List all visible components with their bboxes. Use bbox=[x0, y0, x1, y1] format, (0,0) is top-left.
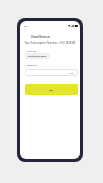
button[interactable]: USD bbox=[25, 69, 78, 76]
button[interactable]: Deactivate/Prepaid bbox=[25, 53, 50, 59]
staticText: Your Subscription Number: +912 3838383 bbox=[20, 41, 80, 45]
staticText: Deactivate/Prepaid bbox=[28, 55, 47, 58]
staticText: Utmall Services bbox=[31, 35, 51, 38]
staticText: USD bbox=[70, 72, 74, 74]
staticText: Service Type bbox=[27, 50, 37, 52]
staticText: 9:41 bbox=[24, 25, 28, 27]
button[interactable]: Next bbox=[25, 84, 78, 95]
other: Network and battery status bbox=[68, 25, 78, 27]
staticText: Amount to Pay bbox=[27, 65, 38, 67]
staticText: Next bbox=[49, 89, 54, 91]
